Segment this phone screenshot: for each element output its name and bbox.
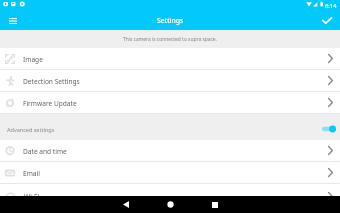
button[interactable]: Done bbox=[314, 11, 340, 30]
staticText: Settings bbox=[157, 16, 184, 25]
staticText: 6:14 bbox=[325, 2, 337, 10]
staticText: Firmware Update bbox=[23, 99, 77, 108]
staticText: Date and time bbox=[23, 147, 67, 156]
staticText: Email bbox=[23, 169, 40, 178]
button[interactable]: Firmware Update bbox=[0, 92, 340, 113]
button[interactable]: Image bbox=[0, 48, 340, 69]
staticText: Detection Settings bbox=[23, 77, 80, 86]
staticText: This camera is connected to supra space. bbox=[123, 36, 217, 43]
button[interactable]: Toggle advanced settings bbox=[321, 123, 337, 135]
button[interactable]: Navigation menu bbox=[0, 11, 26, 30]
staticText: Advanced settings bbox=[7, 126, 55, 133]
button[interactable]: Home bbox=[155, 196, 185, 213]
staticText: Image bbox=[23, 55, 43, 64]
button[interactable]: Email bbox=[0, 162, 340, 183]
button[interactable]: Wi-Fi bbox=[0, 190, 340, 196]
staticText: Wi-Fi bbox=[24, 192, 40, 196]
button[interactable]: Detection Settings bbox=[0, 70, 340, 91]
button[interactable]: Date and time bbox=[0, 140, 340, 161]
button[interactable]: Recent apps bbox=[200, 196, 230, 213]
button[interactable]: Back bbox=[111, 196, 141, 213]
